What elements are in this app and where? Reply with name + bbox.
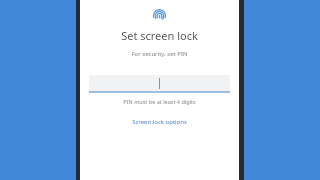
staticText: Set screen lock [121, 28, 198, 43]
staticText: Screen lock options [132, 118, 187, 126]
button[interactable]: Screen lock options [126, 116, 193, 128]
button[interactable] [89, 75, 230, 94]
staticText: PIN must be at least 4 digits [123, 98, 196, 105]
staticText: For security, set PIN [131, 50, 188, 58]
other: Fingerprint [153, 9, 166, 22]
